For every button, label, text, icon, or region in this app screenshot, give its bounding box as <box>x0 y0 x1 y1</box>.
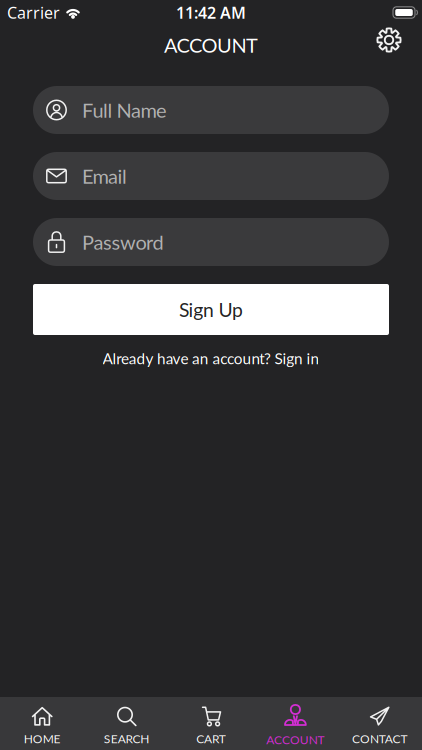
staticText: Full Name <box>82 98 167 122</box>
staticText: SEARCH <box>104 731 149 746</box>
staticText: HOME <box>24 731 60 746</box>
staticText: Carrier <box>7 2 60 23</box>
button[interactable]: HOME <box>0 704 84 746</box>
staticText: Email <box>82 164 127 188</box>
staticText: 11:42 AM <box>176 2 246 23</box>
staticText: ACCOUNT <box>266 732 325 747</box>
button[interactable] <box>375 31 422 59</box>
button[interactable]: Password <box>33 218 389 266</box>
button[interactable]: CART <box>169 704 253 746</box>
staticText: ACCOUNT <box>164 33 258 57</box>
button[interactable]: Sign Up <box>33 284 389 335</box>
staticText: Sign Up <box>179 298 243 321</box>
button[interactable]: ACCOUNT <box>253 703 338 747</box>
staticText: CART <box>196 731 226 746</box>
staticText: Already have an account? Sign in <box>103 349 319 367</box>
staticText: Password <box>82 230 163 254</box>
button[interactable]: CONTACT <box>338 704 422 746</box>
button[interactable]: Full Name <box>33 86 389 134</box>
button[interactable]: Email <box>33 152 389 200</box>
staticText: CONTACT <box>352 731 407 746</box>
button[interactable]: Already have an account? Sign in <box>103 349 319 367</box>
button[interactable]: SEARCH <box>84 704 169 746</box>
